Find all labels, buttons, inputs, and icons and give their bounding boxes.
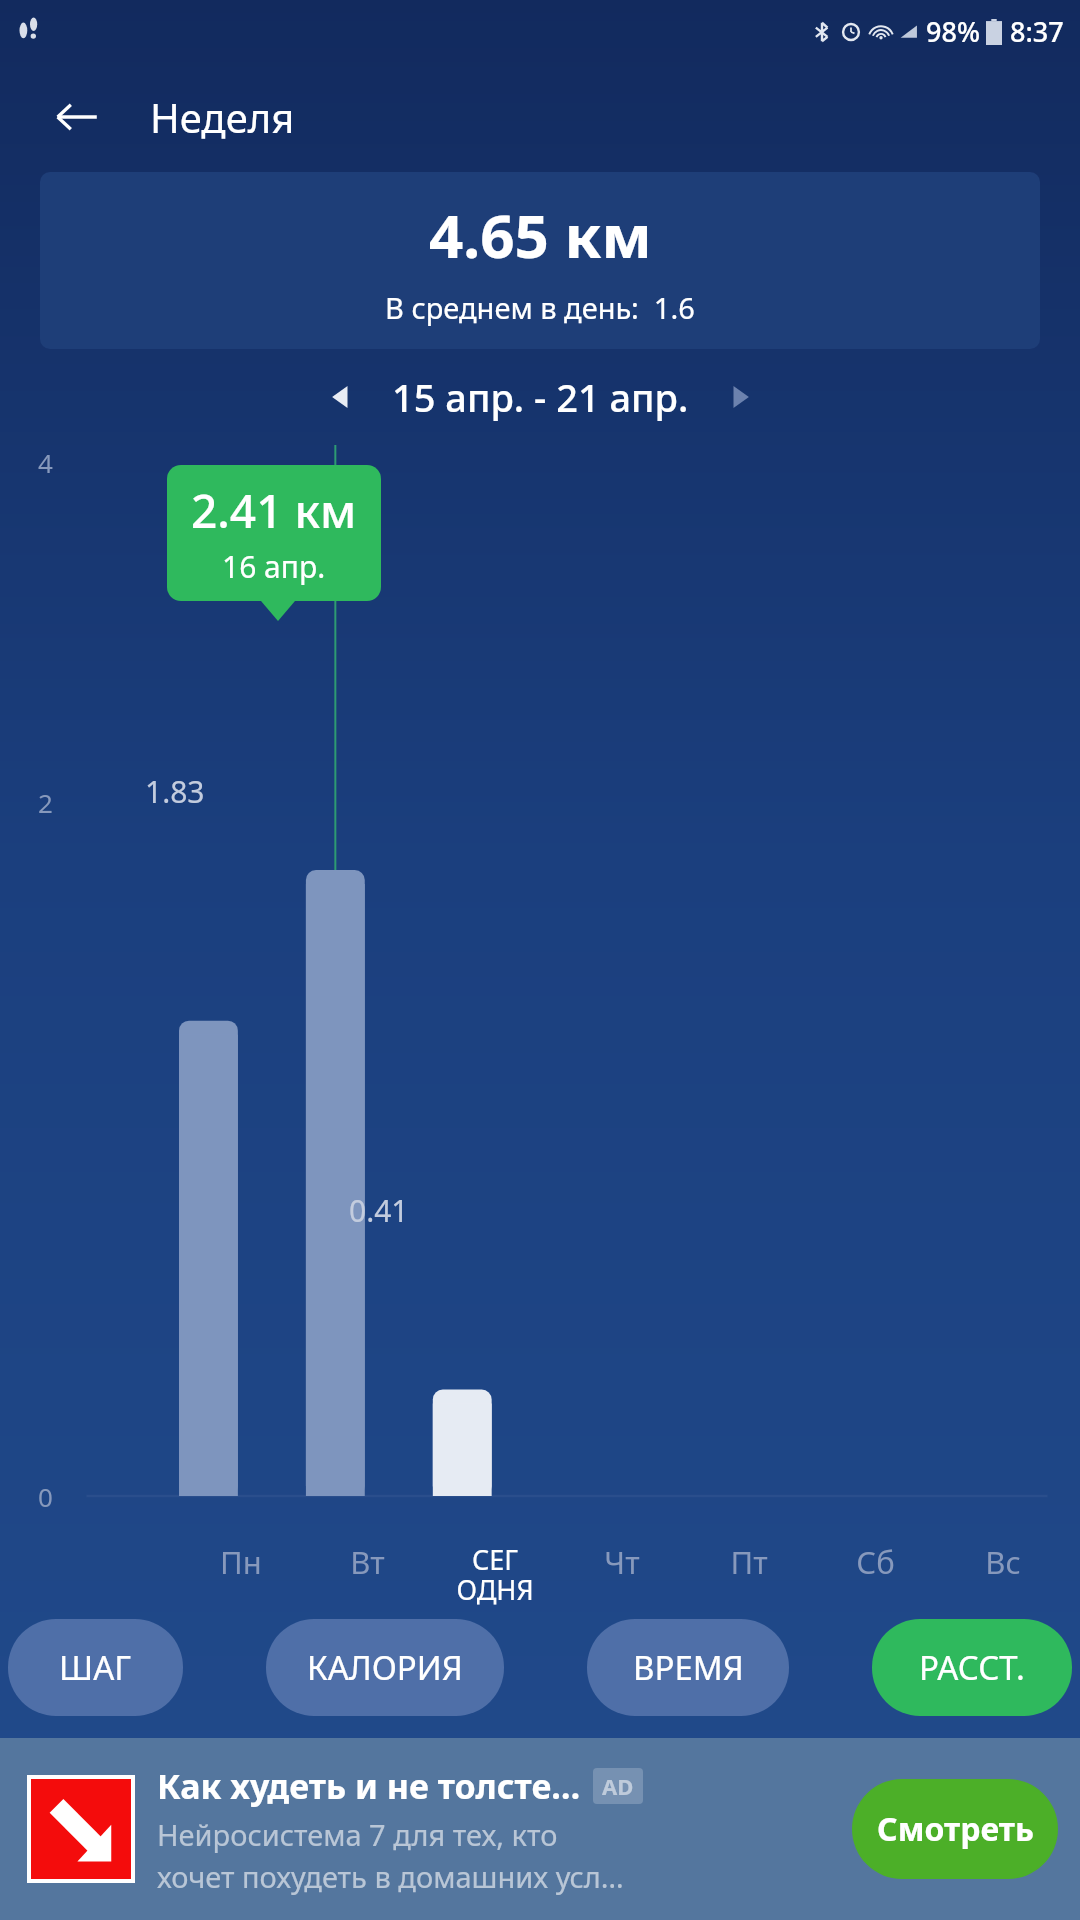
staticText: ВРЕМЯ <box>633 1645 744 1690</box>
staticText: Нейросистема 7 для тех, кто хочет похуде… <box>157 1815 624 1896</box>
staticText: В среднем в день: 1.6 <box>385 288 695 327</box>
button[interactable]: Чт <box>558 1541 685 1583</box>
staticText: 16 апр. <box>222 546 326 587</box>
button[interactable]: СЕГ ОДНЯ <box>431 1541 558 1607</box>
staticText: КАЛОРИЯ <box>307 1645 463 1690</box>
staticText: 0 <box>38 1479 53 1514</box>
staticText: 0.41 <box>349 1190 409 1231</box>
button[interactable]: Пт <box>685 1541 812 1583</box>
staticText: РАССТ. <box>919 1645 1025 1690</box>
staticText: Вт <box>350 1541 385 1583</box>
staticText: 4.65 км <box>429 194 652 276</box>
button[interactable]: ВРЕМЯ <box>587 1619 789 1716</box>
button[interactable]: Смотреть <box>852 1779 1058 1879</box>
staticText: 2.41 км <box>191 479 357 542</box>
staticText: Как худеть и не толсте… <box>157 1763 581 1809</box>
staticText: Смотреть <box>877 1807 1034 1851</box>
staticText: Пт <box>730 1541 768 1583</box>
button[interactable]: РАССТ. <box>872 1619 1072 1716</box>
staticText: 8:37 <box>1010 13 1064 50</box>
button[interactable]: 4.65 км <box>40 172 1040 349</box>
button[interactable]: Как худеть и не толсте… <box>0 1738 1080 1920</box>
button[interactable]: 2.41 км <box>167 465 381 601</box>
staticText: 98% <box>926 13 980 50</box>
button[interactable]: Next week <box>709 367 769 427</box>
staticText: ШАГ <box>59 1645 132 1690</box>
button[interactable]: Пн <box>177 1541 304 1583</box>
staticText: AD <box>602 1771 634 1801</box>
button[interactable]: Back <box>40 80 114 154</box>
staticText: 4 <box>38 445 53 480</box>
button[interactable]: ШАГ <box>8 1619 183 1716</box>
button[interactable]: Сб <box>812 1541 939 1583</box>
button[interactable]: КАЛОРИЯ <box>266 1619 504 1716</box>
staticText: Неделя <box>150 90 295 144</box>
button[interactable]: Previous week <box>312 367 372 427</box>
staticText: Сб <box>856 1541 895 1583</box>
staticText: Вс <box>985 1541 1021 1583</box>
staticText: 15 апр. - 21 апр. <box>392 371 689 423</box>
staticText: Пн <box>220 1541 262 1583</box>
staticText: 2 <box>38 785 53 820</box>
staticText: 1.83 <box>145 771 205 812</box>
staticText: Чт <box>604 1541 640 1583</box>
button[interactable]: Вт <box>304 1541 431 1583</box>
staticText: СЕГ ОДНЯ <box>456 1541 534 1607</box>
button[interactable]: Вс <box>939 1541 1066 1583</box>
